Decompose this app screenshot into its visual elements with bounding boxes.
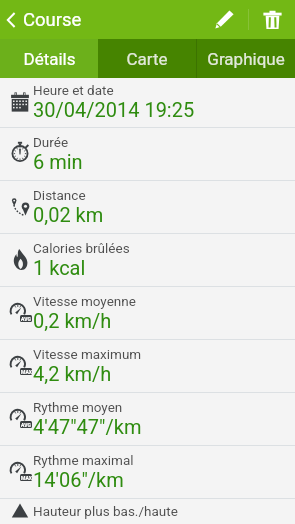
- staticText: 14'06"/km: [33, 468, 124, 491]
- button[interactable]: Graphique: [197, 39, 295, 78]
- button[interactable]: Durée: [0, 128, 295, 180]
- button[interactable]: AVG: [0, 393, 295, 445]
- staticText: 0,02 km: [33, 203, 104, 226]
- staticText: Graphique: [207, 49, 285, 69]
- button[interactable]: Calories brûlées: [0, 234, 295, 286]
- staticText: 6 min: [33, 150, 83, 173]
- staticText: AVG: [21, 422, 31, 428]
- button[interactable]: MAX: [0, 340, 295, 392]
- button[interactable]: Carte: [98, 39, 196, 78]
- staticText: Course: [23, 9, 82, 31]
- staticText: MAX: [21, 369, 32, 375]
- button[interactable]: AVG: [0, 287, 295, 339]
- button[interactable]: Heure et date: [0, 78, 295, 127]
- button[interactable]: Course: [0, 0, 92, 39]
- staticText: Carte: [126, 49, 168, 69]
- staticText: Durée: [33, 134, 69, 150]
- staticText: MAX: [21, 475, 32, 481]
- staticText: Distance: [33, 187, 86, 203]
- staticText: Vitesse moyenne: [33, 293, 136, 309]
- button[interactable]: Hauteur plus bas./haute: [0, 499, 295, 524]
- staticText: 4,2 km/h: [33, 362, 112, 385]
- button[interactable]: Détails: [0, 39, 98, 78]
- staticText: Rythme maximal: [33, 452, 134, 468]
- staticText: 1 kcal: [33, 256, 86, 279]
- staticText: Calories brûlées: [33, 240, 130, 256]
- staticText: Vitesse maximum: [33, 346, 142, 362]
- button[interactable]: Distance: [0, 181, 295, 233]
- staticText: AVG: [21, 316, 31, 322]
- staticText: 30/04/2014 19:25: [33, 98, 195, 121]
- button[interactable]: MAX: [0, 446, 295, 498]
- staticText: 4'47"47"/km: [33, 415, 142, 438]
- staticText: 0,2 km/h: [33, 309, 112, 332]
- button[interactable]: Delete: [249, 0, 295, 39]
- staticText: Hauteur plus bas./haute: [33, 503, 178, 519]
- staticText: Rythme moyen: [33, 399, 123, 415]
- button[interactable]: Edit: [200, 0, 248, 39]
- staticText: Détails: [23, 49, 76, 69]
- staticText: Heure et date: [33, 82, 114, 98]
